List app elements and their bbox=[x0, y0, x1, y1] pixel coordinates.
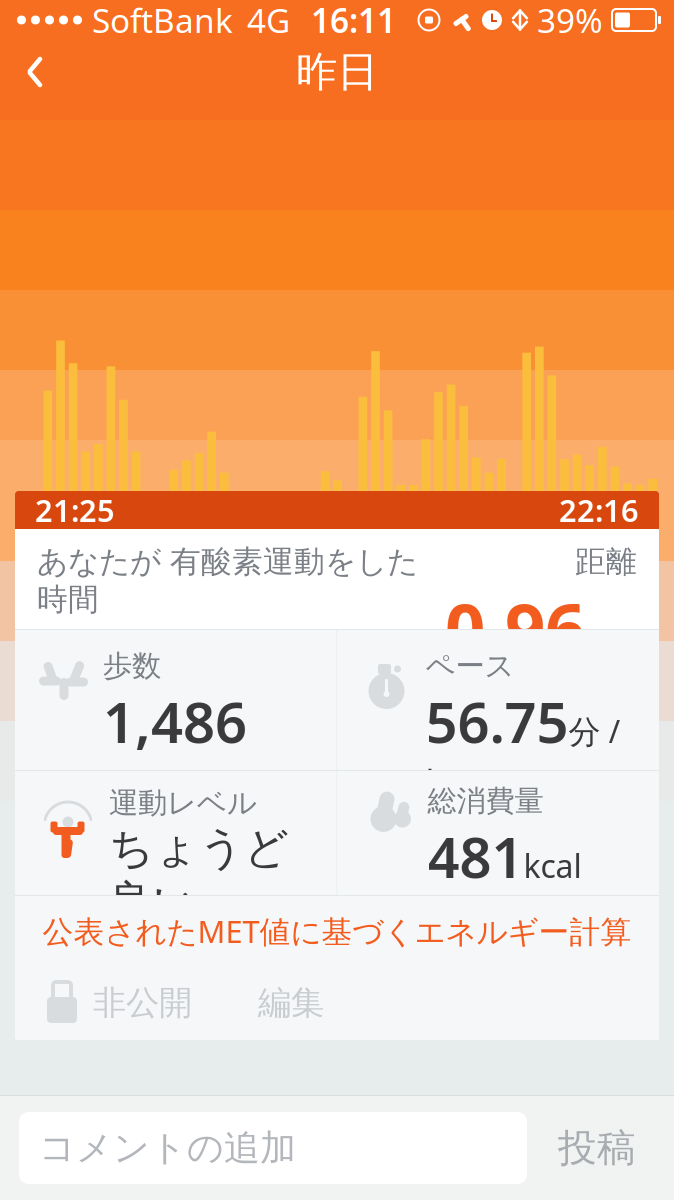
button[interactable]: 公表されたMET値に基づくエネルギー計算 bbox=[15, 896, 659, 966]
staticText: 投稿 bbox=[558, 1124, 636, 1172]
staticText: 55 bbox=[37, 618, 117, 712]
staticText: 編集 bbox=[258, 982, 324, 1023]
staticText: 22:16 bbox=[559, 490, 639, 530]
button[interactable]: 戻る bbox=[0, 40, 71, 104]
staticText: 分 bbox=[117, 661, 150, 702]
staticText: 総消費量 bbox=[427, 783, 543, 819]
staticText: SoftBank bbox=[92, 0, 233, 42]
button[interactable]: 編集 bbox=[192, 966, 324, 1040]
staticText: 0.96 bbox=[445, 581, 585, 674]
staticText: 1,486 bbox=[103, 684, 247, 758]
staticText: 16:11 bbox=[311, 0, 396, 42]
staticText: 距離 bbox=[575, 543, 637, 581]
staticText: 481 bbox=[427, 819, 523, 893]
staticText: 21:25 bbox=[35, 490, 115, 530]
button[interactable]: コメントの追加 bbox=[19, 1112, 527, 1184]
staticText: 運動レベル bbox=[109, 785, 257, 821]
staticText: 39% bbox=[537, 0, 603, 42]
staticText: Km bbox=[585, 620, 637, 664]
staticText: ちょうど良い bbox=[109, 821, 289, 929]
staticText: 非公開 bbox=[93, 982, 192, 1023]
button[interactable]: 投稿 bbox=[527, 1112, 667, 1184]
staticText: 4G bbox=[247, 0, 290, 42]
staticText: 公表されたMET値に基づくエネルギー計算 bbox=[42, 911, 631, 951]
staticText: ペース bbox=[425, 648, 514, 684]
staticText: 56.75 bbox=[425, 684, 568, 758]
staticText: 分 / bbox=[568, 710, 620, 752]
button[interactable]: 非公開 bbox=[15, 966, 192, 1040]
staticText: km bbox=[425, 758, 476, 804]
staticText: kcal bbox=[523, 844, 581, 887]
staticText: コメントの追加 bbox=[39, 1126, 296, 1170]
staticText: 昨日 bbox=[296, 47, 378, 97]
staticText: あなたが 有酸素運動をした 時間 bbox=[37, 543, 418, 618]
staticText: 歩数 bbox=[103, 648, 161, 684]
